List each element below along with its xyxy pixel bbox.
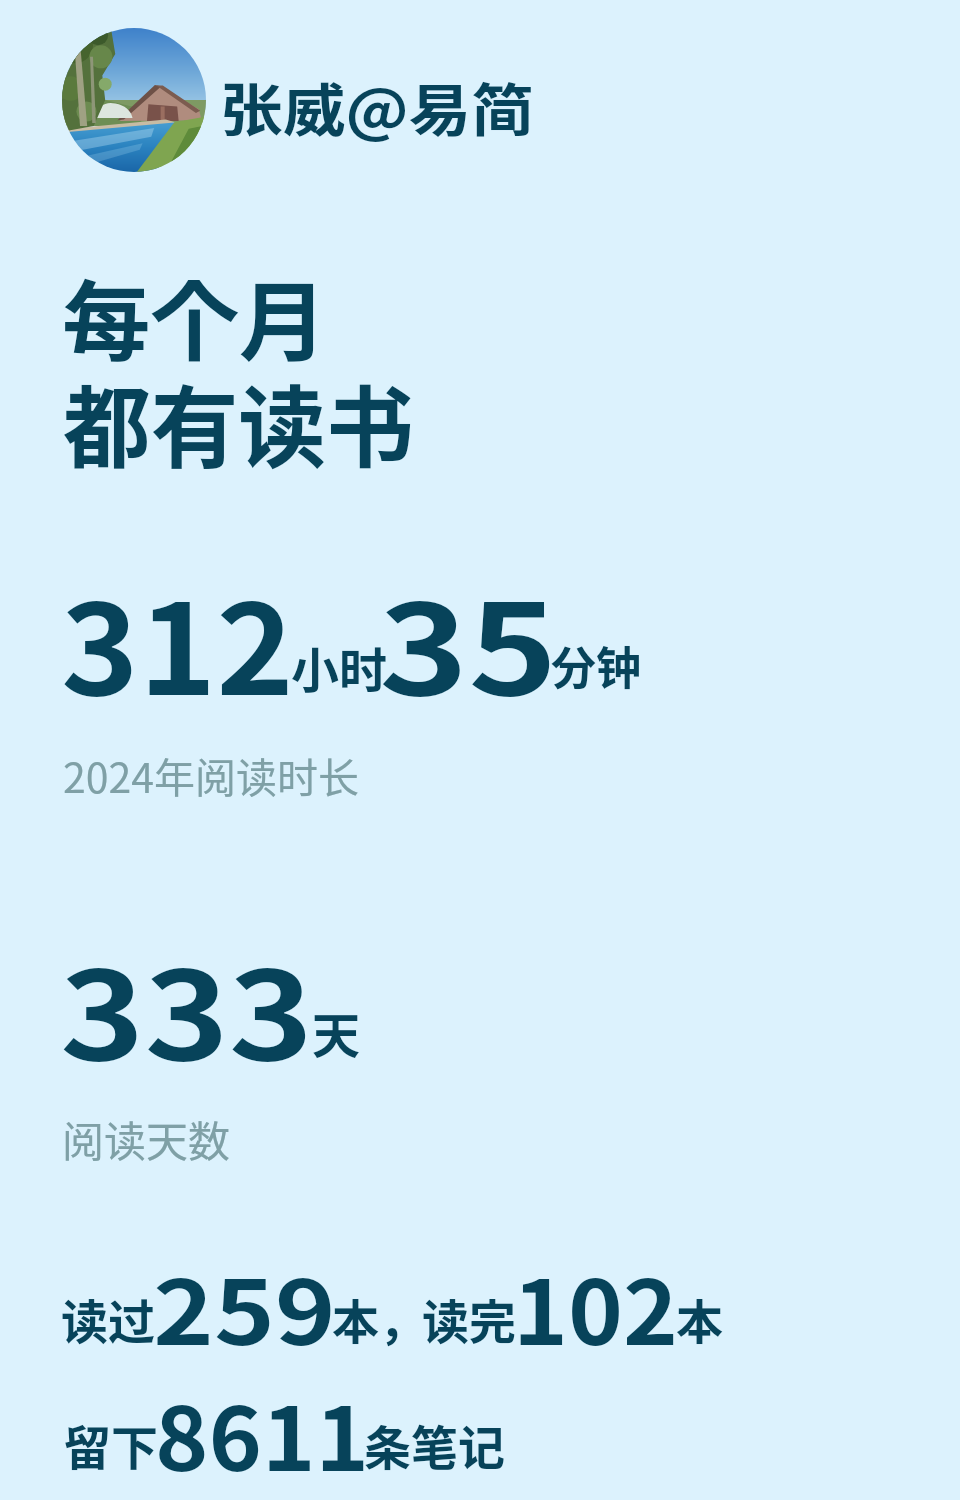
staticText: 天 bbox=[312, 997, 361, 1067]
staticText: 259 bbox=[153, 1242, 336, 1371]
button[interactable]: Profile photo bbox=[62, 28, 506, 172]
button[interactable]: Profile photo bbox=[62, 28, 206, 172]
staticText: 8611 bbox=[155, 1369, 369, 1496]
button[interactable]: 每个月 bbox=[62, 250, 422, 480]
staticText: 条笔记 bbox=[364, 1410, 505, 1478]
staticText: 2024年阅读时长 bbox=[63, 745, 360, 804]
staticText: 333 bbox=[60, 918, 313, 1095]
staticText: 每个月 bbox=[62, 253, 327, 379]
button[interactable]: 333 bbox=[60, 915, 380, 1170]
staticText: 分钟 bbox=[551, 633, 642, 698]
staticText: 本， bbox=[332, 1284, 426, 1352]
staticText: 35 bbox=[379, 550, 558, 731]
staticText: 读完 bbox=[422, 1284, 516, 1352]
staticText: 留下 bbox=[64, 1410, 158, 1478]
button[interactable]: 读过 bbox=[60, 1240, 750, 1490]
staticText: 张威@易简 bbox=[220, 65, 535, 148]
staticText: 312 bbox=[61, 550, 295, 731]
staticText: 读过 bbox=[61, 1284, 155, 1352]
staticText: 阅读天数 bbox=[62, 1108, 231, 1169]
staticText: 小时 bbox=[291, 632, 388, 702]
staticText: 102 bbox=[513, 1242, 678, 1371]
button[interactable]: 312 bbox=[60, 545, 660, 815]
staticText: 都有读书 bbox=[63, 357, 414, 486]
staticText: 本 bbox=[676, 1284, 723, 1352]
